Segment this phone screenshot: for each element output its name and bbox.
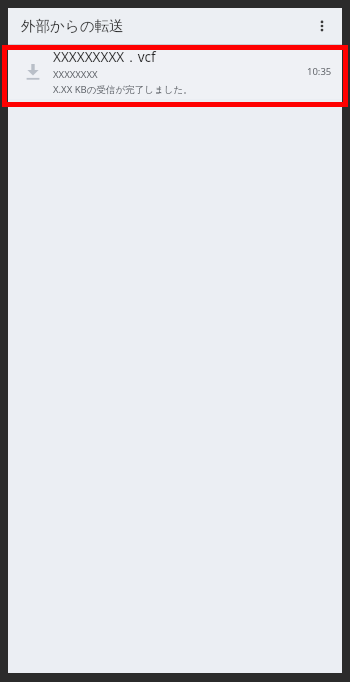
staticText: X.XX KBの受信が完了しました。	[53, 83, 193, 96]
button[interactable]: XXXXXXXXX．vcf	[8, 45, 342, 99]
staticText: XXXXXXXX	[53, 68, 98, 81]
staticText: 10:35	[307, 65, 332, 78]
staticText: XXXXXXXXX．vcf	[53, 48, 156, 66]
button[interactable]: More options	[306, 10, 338, 42]
staticText: 外部からの転送	[21, 17, 306, 35]
